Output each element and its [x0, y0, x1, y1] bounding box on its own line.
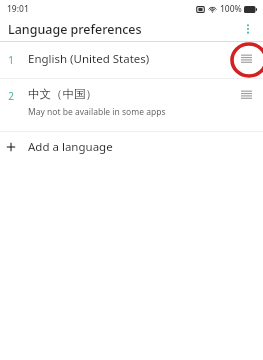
- staticText: Language preferences: [8, 21, 142, 38]
- staticText: 100%: [220, 3, 242, 15]
- staticText: 2: [8, 89, 14, 103]
- button[interactable]: 1: [0, 42, 263, 78]
- button[interactable]: Add a language: [0, 132, 263, 162]
- staticText: Add a language: [28, 139, 113, 155]
- staticText: 1: [8, 53, 14, 67]
- button[interactable]: Reorder English (United States): [229, 42, 263, 78]
- staticText: English (United States): [28, 51, 150, 67]
- staticText: 19:01: [7, 3, 29, 15]
- button[interactable]: Reorder 中文（中国）: [229, 79, 263, 131]
- button[interactable]: More options: [237, 18, 259, 40]
- staticText: 中文（中国）: [28, 87, 97, 101]
- button[interactable]: 2: [0, 79, 263, 131]
- staticText: May not be available in some apps: [28, 106, 166, 118]
